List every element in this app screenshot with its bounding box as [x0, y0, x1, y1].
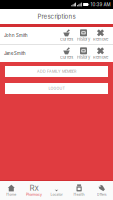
- button[interactable]: Home: [0, 184, 23, 197]
- staticText: John Smith: [4, 33, 28, 38]
- button[interactable]: Locator: [45, 184, 68, 197]
- staticText: Offers: [97, 192, 107, 197]
- button[interactable]: ADD FAMILY MEMBER: [5, 66, 108, 77]
- staticText: Home: [6, 192, 16, 197]
- button[interactable]: Current: [58, 45, 75, 62]
- staticText: Jane Smith: [4, 51, 26, 56]
- staticText: Current: [60, 55, 73, 60]
- staticText: Prescriptions: [37, 13, 75, 20]
- button[interactable]: Current: [58, 27, 75, 44]
- button[interactable]: Health: [68, 184, 90, 197]
- button[interactable]: Offers: [90, 184, 113, 197]
- button[interactable]: Remove: [92, 45, 109, 62]
- button[interactable]: History: [75, 45, 92, 62]
- staticText: History: [77, 55, 90, 60]
- button[interactable]: Remove: [92, 27, 109, 44]
- staticText: Remove: [93, 55, 108, 60]
- staticText: LOGOUT: [48, 86, 64, 91]
- staticText: Remove: [93, 37, 108, 42]
- staticText: Rx: [29, 183, 38, 193]
- staticText: History: [77, 37, 90, 42]
- staticText: 10:39 AM: [90, 2, 110, 7]
- staticText: Health: [74, 192, 85, 197]
- staticText: ADD FAMILY MEMBER: [37, 69, 76, 74]
- button[interactable]: History: [75, 27, 92, 44]
- staticText: Current: [60, 37, 73, 42]
- button[interactable]: LOGOUT: [5, 83, 108, 94]
- staticText: Locator: [50, 192, 62, 197]
- staticText: Pharmacy: [26, 192, 42, 197]
- button[interactable]: Rx: [23, 184, 45, 197]
